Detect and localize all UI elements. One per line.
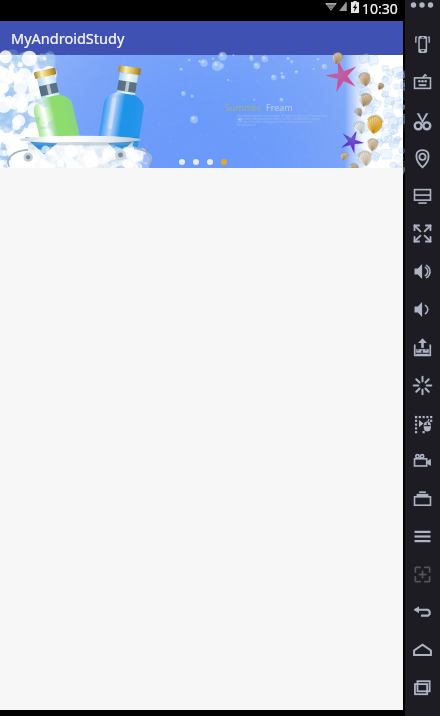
button[interactable]: Location xyxy=(405,140,439,176)
button[interactable] xyxy=(207,159,213,165)
button[interactable]: Menu xyxy=(405,518,439,554)
button[interactable]: Camera xyxy=(405,442,439,478)
button[interactable]: Back xyxy=(405,594,439,630)
button[interactable]: Snapshot xyxy=(405,367,439,403)
button[interactable]: Add device xyxy=(405,556,439,592)
button[interactable]: Install APK xyxy=(405,329,439,365)
button[interactable]: Cut xyxy=(405,102,439,138)
button[interactable]: More options xyxy=(411,0,433,10)
button[interactable]: Keyboard xyxy=(405,64,439,100)
staticText: Fream xyxy=(266,101,293,113)
button[interactable]: Rotate xyxy=(405,26,439,62)
button[interactable]: MyAndroidStudy xyxy=(0,21,403,55)
button[interactable]: Volume up xyxy=(405,253,439,289)
button[interactable]: Summer xyxy=(0,55,403,168)
staticText: why width adaptaton very continue off bu… xyxy=(237,114,328,126)
button[interactable]: Fullscreen xyxy=(405,215,439,251)
button[interactable]: Recents xyxy=(405,669,439,705)
button[interactable] xyxy=(221,159,227,165)
staticText: Summer xyxy=(225,101,262,113)
button[interactable] xyxy=(193,159,199,165)
button[interactable]: Screenshot xyxy=(405,480,439,516)
button[interactable] xyxy=(179,159,185,165)
button[interactable]: Volume down xyxy=(405,291,439,327)
staticText: MyAndroidStudy xyxy=(11,28,125,48)
button[interactable]: Record screen xyxy=(405,405,439,441)
button[interactable]: Display xyxy=(405,177,439,213)
staticText: 10:30 xyxy=(362,0,398,18)
button[interactable]: Home xyxy=(405,632,439,668)
